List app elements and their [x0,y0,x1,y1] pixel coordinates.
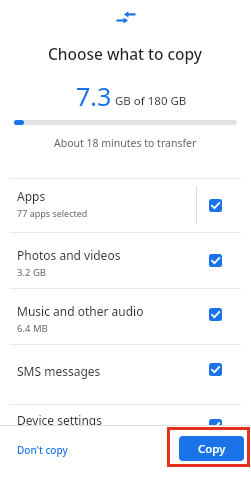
button[interactable]: Don't copy [10,438,75,462]
staticText: Copy [198,441,226,457]
button[interactable]: SMS messages [0,344,251,404]
button[interactable]: Music and other audio [0,288,251,344]
staticText: Device settings [17,412,102,428]
button[interactable] [209,308,222,321]
button[interactable] [209,254,222,267]
staticText: Photos and videos [17,247,121,263]
staticText: GB of 180 GB [115,93,187,109]
staticText: 3.2 GB [17,266,46,279]
staticText: 6.4 MB [17,322,48,335]
staticText: 7.3 [76,79,112,113]
staticText: Music and other audio [17,303,144,319]
button[interactable] [209,419,222,432]
staticText: 77 apps selected [17,207,88,219]
staticText: Don't copy [17,443,68,457]
button[interactable] [209,363,222,376]
button[interactable]: Device settings [0,404,251,454]
button[interactable]: Apps [0,178,251,232]
staticText: Apps [17,188,46,204]
button[interactable] [209,199,222,212]
button[interactable]: Photos and videos [0,232,251,287]
staticText: Choose what to copy [48,43,203,64]
staticText: About 18 minutes to transfer [54,136,197,150]
button[interactable]: Copy [179,436,244,461]
staticText: SMS messages [17,363,101,379]
